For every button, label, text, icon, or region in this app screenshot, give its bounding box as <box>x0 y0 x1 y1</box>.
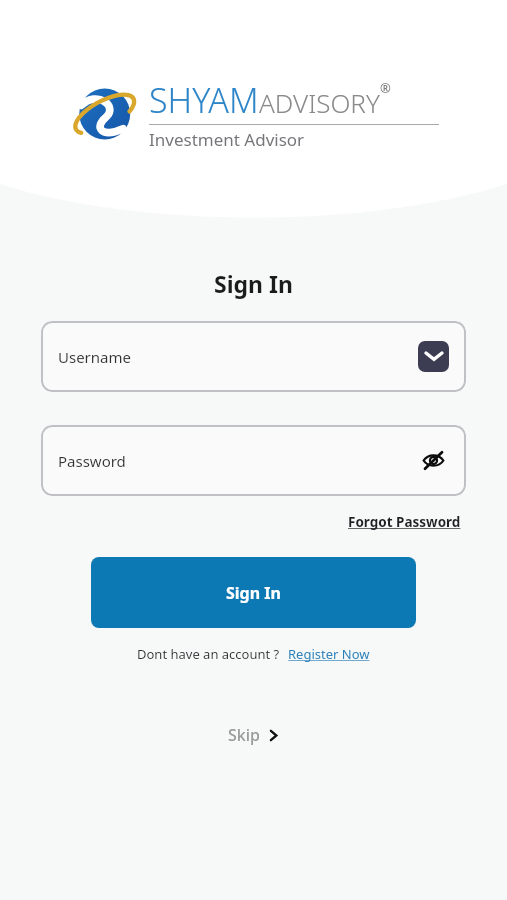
staticText: ® <box>380 79 391 97</box>
staticText: Register Now <box>288 645 370 663</box>
staticText: Password <box>58 451 418 471</box>
staticText: Investment Advisor <box>149 128 305 151</box>
staticText: SHYAM <box>149 77 259 123</box>
button[interactable]: Skip <box>218 718 290 752</box>
button[interactable]: Email <box>418 341 449 372</box>
staticText: Skip <box>228 724 260 746</box>
staticText: Forgot Password <box>348 513 461 531</box>
staticText: ADVISORY <box>259 85 380 120</box>
button[interactable]: Username <box>41 321 466 392</box>
button[interactable]: Register Now <box>288 645 370 663</box>
button[interactable]: Forgot Password <box>346 511 463 533</box>
button[interactable]: Sign In <box>91 557 416 628</box>
button[interactable]: Show password <box>418 445 449 476</box>
button[interactable]: Password <box>41 425 466 496</box>
staticText: Sign In <box>214 268 293 299</box>
staticText: Sign In <box>226 582 281 604</box>
staticText: Dont have an account ? <box>137 645 280 663</box>
staticText: Username <box>58 347 418 367</box>
